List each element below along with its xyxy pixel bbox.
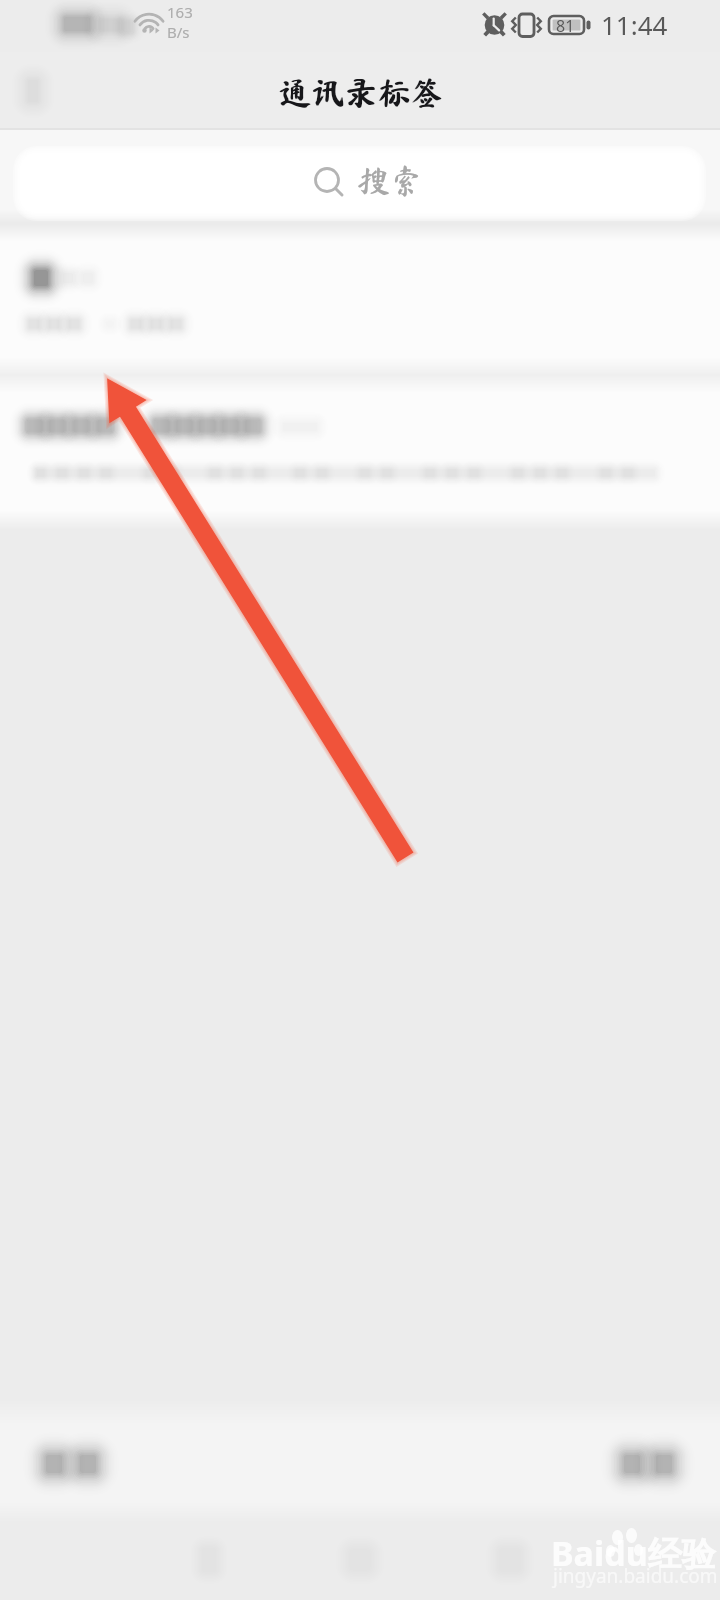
staticText: B/s xyxy=(167,22,190,42)
staticText: 搜索 xyxy=(357,164,423,197)
button[interactable]: Manage xyxy=(592,1428,704,1490)
staticText: 通讯录标签 xyxy=(279,76,444,109)
staticText: 163 xyxy=(167,2,193,22)
staticText: jingyan.baidu.com xyxy=(553,1563,718,1589)
button[interactable]: Recent apps xyxy=(521,1518,597,1594)
staticText: 81 xyxy=(556,15,575,37)
button[interactable] xyxy=(21,154,698,213)
staticText: Baidu经验 xyxy=(551,1530,716,1576)
button[interactable] xyxy=(0,375,720,520)
staticText: 11:44 xyxy=(601,7,668,42)
button[interactable] xyxy=(0,233,720,375)
button[interactable]: Back xyxy=(5,63,61,119)
staticText: 通讯录标签 xyxy=(278,76,443,109)
button[interactable]: New label xyxy=(16,1428,128,1490)
